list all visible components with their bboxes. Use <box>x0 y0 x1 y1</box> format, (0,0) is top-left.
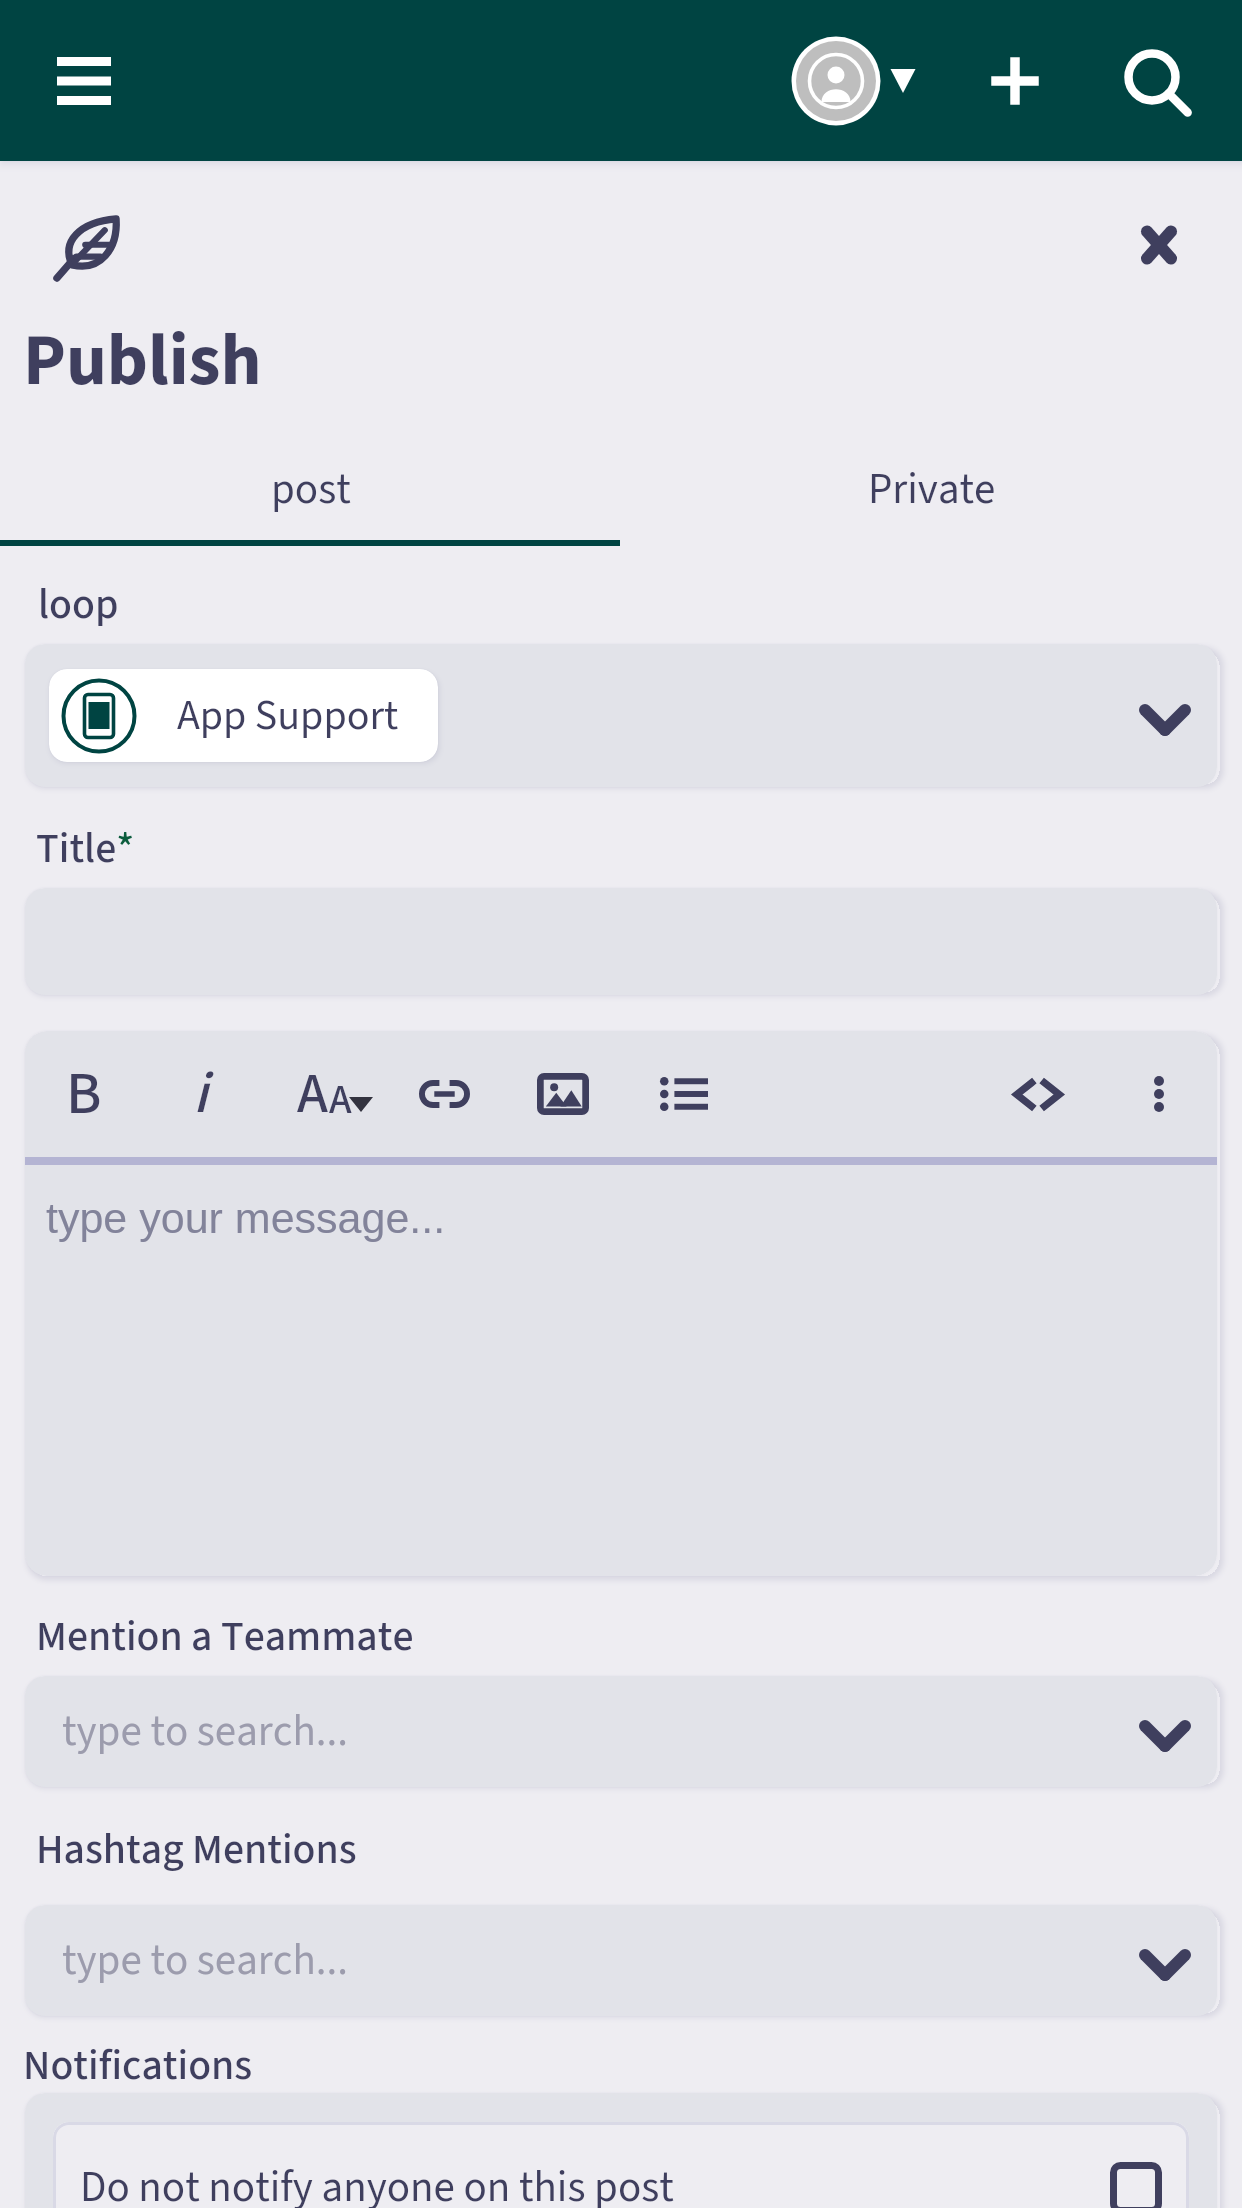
staticText: type to search... <box>62 1930 348 1991</box>
button[interactable]: Code view <box>995 1031 1081 1157</box>
staticText: Notifications <box>23 2036 253 2096</box>
button[interactable]: Italic <box>172 1031 228 1157</box>
button[interactable]: Menu <box>34 31 134 131</box>
staticText: loop <box>38 575 119 635</box>
button[interactable]: type to search... <box>25 1676 1217 1787</box>
staticText: A <box>297 1055 328 1135</box>
staticText: Publish <box>23 310 262 413</box>
button[interactable]: Private <box>621 440 1242 546</box>
button[interactable]: Account <box>786 31 926 131</box>
button[interactable]: Search <box>1102 31 1202 131</box>
staticText: Do not notify anyone on this post <box>80 2157 674 2208</box>
button[interactable]: Create <box>965 31 1065 131</box>
staticText: Mention a Teammate <box>36 1607 414 1667</box>
button[interactable]: App Support <box>25 644 1217 787</box>
button[interactable]: Bulleted list <box>642 1031 726 1157</box>
staticText: Private <box>868 459 996 520</box>
staticText: B <box>66 1052 102 1137</box>
staticText: i <box>193 1053 208 1136</box>
button[interactable]: Insert image <box>519 1031 607 1157</box>
staticText: type your message... <box>46 1194 446 1242</box>
staticText: Title* <box>36 819 135 879</box>
button[interactable]: Font size <box>280 1031 390 1157</box>
staticText: type to search... <box>62 1701 348 1762</box>
button[interactable]: post <box>0 440 621 546</box>
button[interactable]: type to search... <box>25 1905 1217 2016</box>
staticText: post <box>271 459 351 520</box>
staticText: Hashtag Mentions <box>36 1820 357 1880</box>
staticText: A <box>329 1071 352 1129</box>
button[interactable]: Insert link <box>401 1031 488 1157</box>
button[interactable]: Close <box>1114 200 1204 290</box>
button[interactable]: Do not notify anyone on this post <box>53 2122 1189 2208</box>
button[interactable]: More options <box>1136 1031 1182 1157</box>
staticText: App Support <box>177 686 399 746</box>
button[interactable]: Bold <box>52 1031 116 1157</box>
button[interactable]: Compose post <box>55 217 145 307</box>
